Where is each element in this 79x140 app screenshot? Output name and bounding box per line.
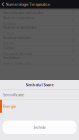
staticText: Numere karmice — [3, 15, 34, 20]
button[interactable]: Numere karmice — [0, 16, 79, 25]
staticText: Analiza numelui — [3, 35, 31, 40]
staticText: Perioade de viata — [3, 51, 32, 56]
staticText: Semnificatia numerelor — [3, 10, 44, 15]
button[interactable]: Numerologie Terapeutica — [0, 0, 79, 9]
staticText: Semnificatie — [3, 92, 24, 97]
staticText: Numerologie Terapeutica — [5, 2, 49, 7]
staticText: Simboluri — [3, 55, 20, 60]
button[interactable]: Numarul destinului — [0, 25, 79, 35]
staticText: Cicluri — [3, 45, 15, 50]
staticText: Inchide — [33, 125, 45, 130]
button[interactable]: Semnificatia numerelor — [0, 9, 79, 16]
staticText: Energie — [3, 104, 16, 109]
button[interactable]: Semnificatie — [0, 90, 79, 99]
staticText: Simbolul Soare — [25, 82, 53, 87]
staticText: Analiza — [3, 21, 16, 26]
button[interactable]: Energie — [0, 100, 79, 113]
staticText: Numarul destinului — [3, 24, 36, 30]
button[interactable]: Analiza numelui — [0, 35, 79, 46]
button[interactable]: Inchide — [2, 120, 76, 134]
